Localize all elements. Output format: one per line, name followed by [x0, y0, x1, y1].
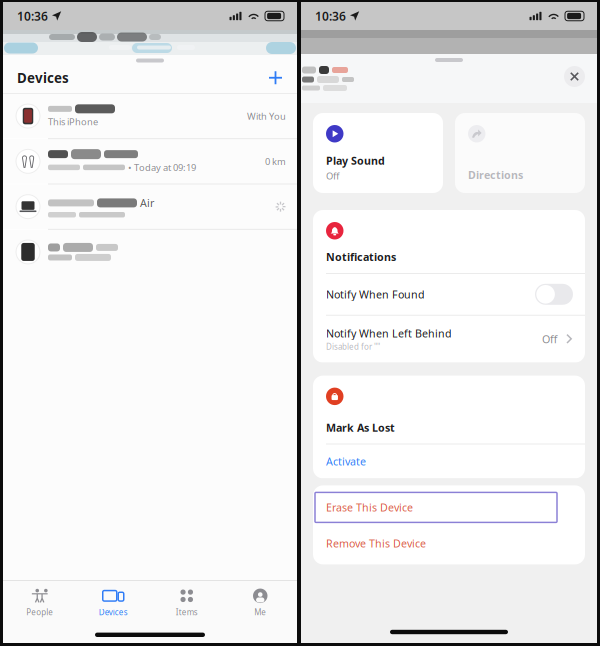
- button[interactable]: [3, 230, 297, 274]
- button[interactable]: Directions: [455, 113, 585, 193]
- staticText: Off: [542, 332, 557, 346]
- button[interactable]: Remove This Device: [313, 522, 585, 564]
- staticText: Erase This Device: [326, 500, 413, 514]
- staticText: Activate: [326, 454, 366, 468]
- staticText: 10:36: [315, 8, 346, 24]
- staticText: 0 km: [265, 155, 286, 168]
- button[interactable]: Notify When Found: [313, 274, 585, 315]
- staticText: Devices: [17, 69, 69, 87]
- button[interactable]: Notify When Left Behind: [313, 316, 585, 363]
- button[interactable]: People: [3, 588, 76, 617]
- button[interactable]: Close: [564, 66, 585, 87]
- staticText: Air: [140, 196, 154, 210]
- staticText: 10:36: [17, 8, 48, 24]
- button[interactable]: Activate: [313, 444, 585, 478]
- button[interactable]: Add device: [264, 66, 287, 89]
- staticText: With You: [247, 110, 286, 122]
- staticText: This iPhone: [48, 115, 98, 128]
- button[interactable]: Play Sound: [313, 113, 443, 193]
- staticText: Devices: [99, 607, 128, 617]
- staticText: People: [26, 607, 53, 617]
- button[interactable]: Air: [3, 184, 297, 229]
- button[interactable]: Devices: [76, 588, 150, 617]
- staticText: Directions: [468, 168, 523, 182]
- staticText: Play Sound: [326, 153, 385, 168]
- staticText: Disabled for "": [326, 341, 380, 352]
- staticText: Notifications: [326, 250, 396, 264]
- staticText: Notify When Left Behind: [326, 326, 452, 340]
- staticText: Notify When Found: [326, 287, 425, 301]
- staticText: Remove This Device: [326, 536, 426, 550]
- staticText: • Today at 09:19: [128, 161, 196, 174]
- button[interactable]: This iPhone: [3, 94, 297, 138]
- button[interactable]: Items: [150, 588, 223, 617]
- staticText: Mark As Lost: [326, 420, 395, 435]
- staticText: Items: [176, 607, 198, 617]
- button[interactable]: • Today at 09:19: [3, 139, 297, 184]
- button[interactable]: Erase This Device: [313, 485, 585, 522]
- button[interactable]: Me: [223, 588, 297, 617]
- staticText: Off: [326, 170, 339, 182]
- staticText: Me: [254, 607, 266, 617]
